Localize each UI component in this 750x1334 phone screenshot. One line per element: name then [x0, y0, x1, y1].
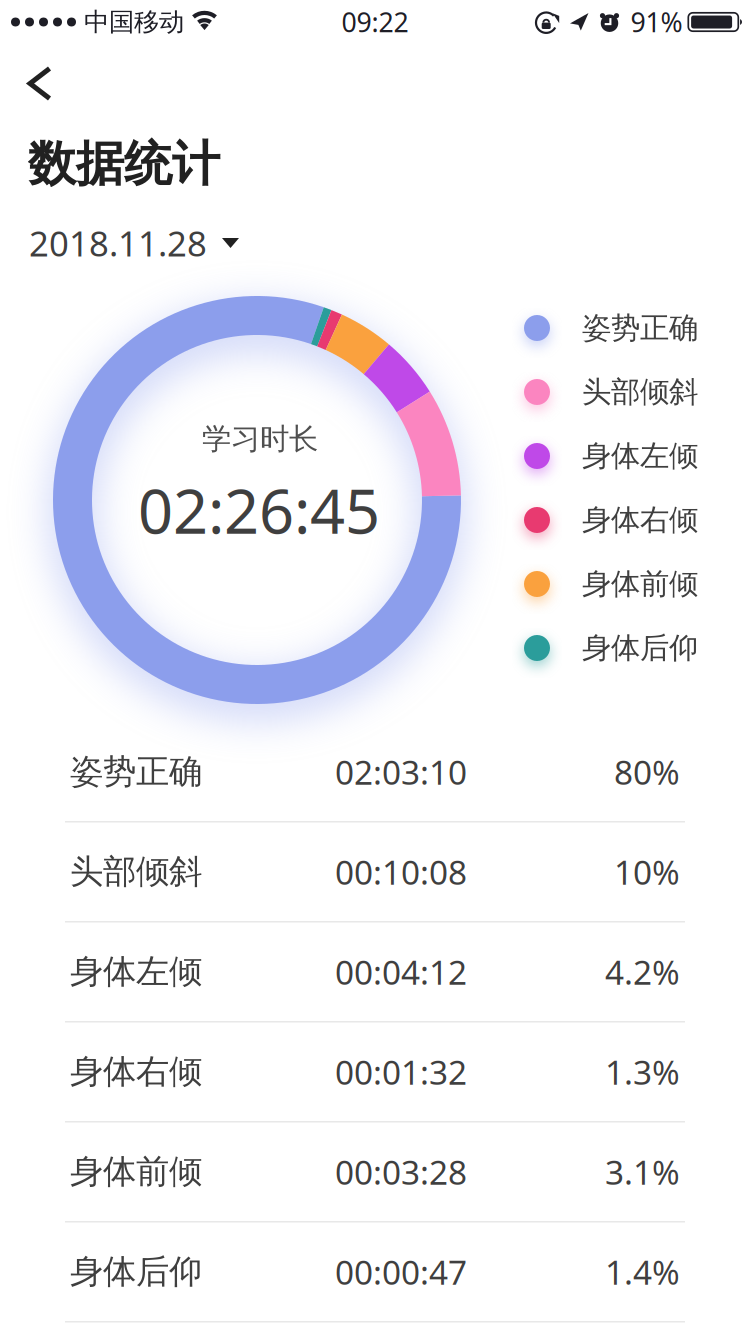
staticText: 00:04:12 [335, 950, 467, 994]
staticText: 姿势正确 [582, 310, 698, 346]
staticText: 3.1% [605, 1150, 680, 1194]
staticText: 身体右倾 [582, 502, 698, 538]
staticText: 身体前倾 [70, 1151, 202, 1192]
staticText: 头部倾斜 [70, 851, 202, 892]
button[interactable]: 2018.11.28 [29, 220, 239, 266]
staticText: 身体后仰 [582, 630, 698, 666]
staticText: 00:10:08 [335, 850, 467, 894]
staticText: 学习时长 [202, 421, 318, 457]
staticText: 09:22 [341, 4, 408, 40]
staticText: 02:26:45 [138, 469, 380, 551]
staticText: 00:03:28 [335, 1150, 467, 1194]
staticText: 姿势正确 [70, 751, 202, 792]
button[interactable]: Back [15, 54, 65, 114]
staticText: 80% [614, 750, 680, 794]
staticText: 00:01:32 [335, 1050, 467, 1094]
staticText: 身体前倾 [582, 566, 698, 602]
staticText: 身体左倾 [70, 951, 202, 992]
staticText: 身体右倾 [70, 1051, 202, 1092]
staticText: 身体后仰 [70, 1251, 202, 1292]
staticText: 1.3% [605, 1050, 680, 1094]
staticText: 1.4% [605, 1250, 680, 1294]
staticText: 00:00:47 [335, 1250, 467, 1294]
staticText: 02:03:10 [335, 750, 467, 794]
staticText: 4.2% [605, 950, 680, 994]
staticText: 数据统计 [28, 134, 220, 193]
staticText: 10% [614, 850, 680, 894]
staticText: 2018.11.28 [29, 220, 207, 266]
staticText: 91% [630, 4, 682, 40]
staticText: 身体左倾 [582, 438, 698, 474]
staticText: 中国移动 [84, 6, 184, 37]
staticText: 头部倾斜 [582, 374, 698, 410]
